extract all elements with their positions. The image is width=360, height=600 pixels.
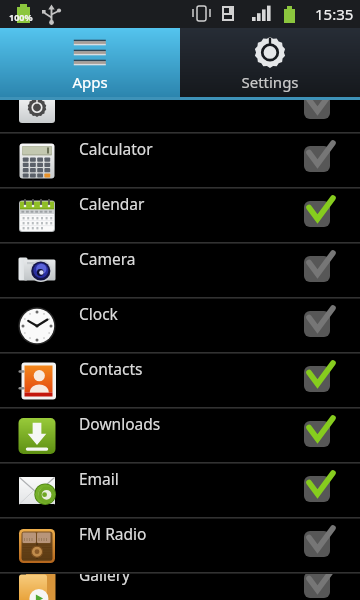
staticText: 100% [9, 11, 33, 23]
button[interactable]: Apps [0, 28, 180, 100]
button[interactable]: Gallery checkbox [300, 574, 334, 600]
button[interactable]: Gallery [0, 574, 360, 600]
button[interactable]: Calculator checkbox [300, 142, 334, 176]
button[interactable]: Settings [180, 28, 360, 100]
staticText: 15:35 [315, 4, 354, 24]
staticText: Contacts [79, 358, 143, 379]
button[interactable]: Clock checkbox [300, 307, 334, 341]
button[interactable]: Contacts [0, 354, 360, 407]
staticText: Calendar [79, 193, 145, 214]
button[interactable]: Contacts checkbox [300, 362, 334, 396]
button[interactable]: Email [0, 464, 360, 517]
staticText: Gallery [79, 574, 131, 585]
button[interactable]: FM Radio checkbox [300, 527, 334, 561]
staticText: Downloads [79, 413, 161, 434]
button[interactable]: Email checkbox [300, 472, 334, 506]
button[interactable]: FM Radio [0, 519, 360, 572]
button[interactable]: Calendar checkbox [300, 197, 334, 231]
button[interactable]: Downloads checkbox [300, 417, 334, 451]
staticText: Camera [79, 248, 136, 269]
button[interactable]: Settings checkbox [0, 100, 360, 132]
staticText: Calculator [79, 138, 153, 159]
staticText: Settings [180, 72, 360, 92]
button[interactable]: Calculator [0, 134, 360, 187]
button[interactable]: Downloads [0, 409, 360, 462]
button[interactable]: Camera [0, 244, 360, 297]
staticText: Email [79, 468, 119, 489]
staticText: Apps [0, 72, 180, 92]
staticText: FM Radio [79, 523, 147, 544]
button[interactable]: Calendar [0, 189, 360, 242]
button[interactable]: Clock [0, 299, 360, 352]
button[interactable]: Camera checkbox [300, 252, 334, 286]
staticText: Clock [79, 303, 118, 324]
button[interactable]: Settings checkbox [300, 100, 334, 123]
